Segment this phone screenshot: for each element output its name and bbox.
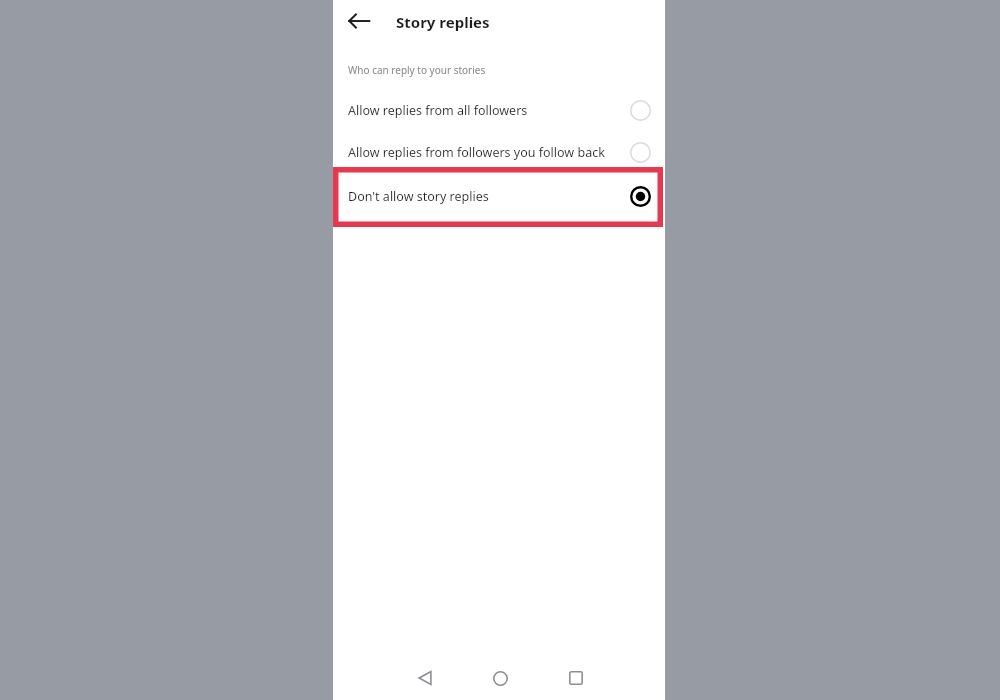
button[interactable]: Back: [339, 1, 379, 41]
staticText: Story replies: [396, 12, 490, 32]
staticText: Don't allow story replies: [348, 188, 489, 205]
button[interactable]: Allow replies from all followers: [333, 90, 665, 130]
staticText: Allow replies from all followers: [348, 102, 528, 119]
button[interactable]: Recent apps: [558, 660, 594, 696]
button[interactable]: Don't allow story replies: [333, 176, 665, 216]
button[interactable]: Allow replies from followers you follow …: [333, 132, 665, 172]
staticText: Who can reply to your stories: [348, 63, 486, 77]
button[interactable]: Home: [482, 660, 518, 696]
staticText: Allow replies from followers you follow …: [348, 144, 605, 161]
button[interactable]: Back: [407, 660, 443, 696]
